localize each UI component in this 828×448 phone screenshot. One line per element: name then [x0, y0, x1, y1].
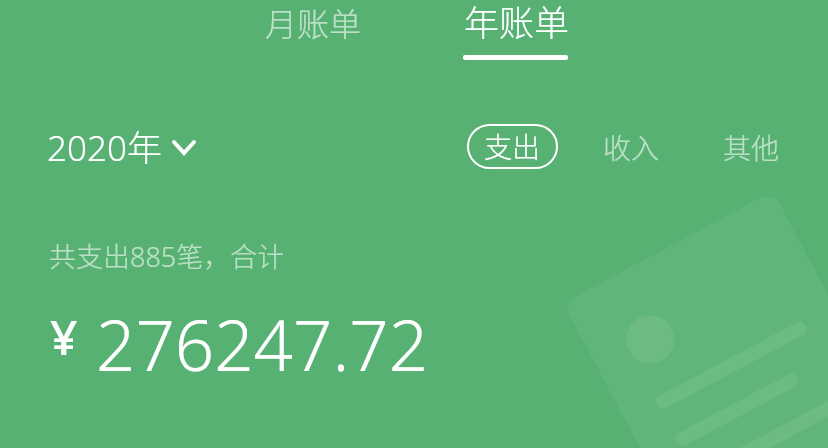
staticText: 2020年 — [47, 120, 162, 171]
button[interactable]: 收入 — [586, 125, 676, 170]
button[interactable]: 支出 — [467, 124, 558, 169]
button[interactable]: 月账单 — [245, 0, 382, 59]
staticText: 276247.72 — [96, 297, 429, 391]
staticText: 年账单 — [464, 0, 570, 46]
staticText: 支出 — [484, 126, 541, 167]
staticText: 月账单 — [265, 0, 362, 45]
staticText: 其他 — [723, 127, 780, 168]
staticText: 收入 — [603, 127, 660, 168]
staticText: 共支出885笔，合计 — [49, 236, 285, 275]
button[interactable]: 2020年 — [35, 110, 208, 181]
staticText: ¥ — [50, 304, 78, 369]
other: Choose year — [172, 140, 196, 156]
button[interactable]: 其他 — [706, 125, 796, 170]
button[interactable]: 年账单 — [450, 0, 584, 60]
